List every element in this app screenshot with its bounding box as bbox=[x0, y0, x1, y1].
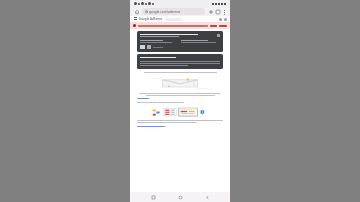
button[interactable]: Menu bbox=[133, 17, 137, 21]
button[interactable]: Action bbox=[219, 18, 222, 21]
button[interactable]: More options bbox=[221, 9, 227, 15]
button[interactable]: Home bbox=[176, 193, 184, 201]
staticText: Google AdSense bbox=[139, 17, 163, 21]
button[interactable] bbox=[130, 22, 230, 29]
button[interactable]: Tabs bbox=[214, 8, 221, 15]
button[interactable]: New tab bbox=[207, 8, 214, 15]
button[interactable] bbox=[137, 98, 149, 99]
button[interactable]: Recents bbox=[149, 193, 157, 201]
button[interactable]: google.com/adsense bbox=[142, 8, 205, 15]
button[interactable]: Back bbox=[203, 193, 211, 201]
button[interactable]: Action bbox=[224, 18, 227, 21]
button[interactable] bbox=[137, 54, 223, 69]
button[interactable] bbox=[137, 126, 165, 127]
button[interactable]: Close bbox=[137, 31, 223, 52]
button[interactable]: Home bbox=[133, 8, 140, 15]
staticText: google.com/adsense bbox=[149, 10, 181, 14]
